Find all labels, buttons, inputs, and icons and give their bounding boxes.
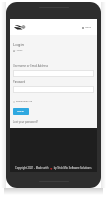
- button[interactable]: Home logo: [14, 22, 25, 32]
- button[interactable]: Menu: [81, 24, 93, 31]
- staticText: - Login: [15, 49, 23, 52]
- staticText: ♥: [50, 167, 53, 170]
- staticText: by Trick Mix Software Solutions: [53, 166, 92, 170]
- staticText: Copyright 2021 - Made with: [15, 166, 50, 170]
- button[interactable]: Lost your password?: [13, 120, 38, 124]
- staticText: Username or Email Address: [13, 64, 48, 68]
- button[interactable]: Remember Me: [13, 100, 32, 103]
- staticText: Login: [13, 41, 25, 47]
- staticText: LOG IN: [17, 110, 25, 113]
- staticText: Remember Me: [16, 100, 32, 103]
- button[interactable]: LOG IN: [13, 108, 29, 115]
- staticText: Password: [13, 80, 26, 84]
- button[interactable]: [13, 70, 94, 77]
- staticText: Menu: [85, 26, 92, 29]
- button[interactable]: [13, 86, 94, 93]
